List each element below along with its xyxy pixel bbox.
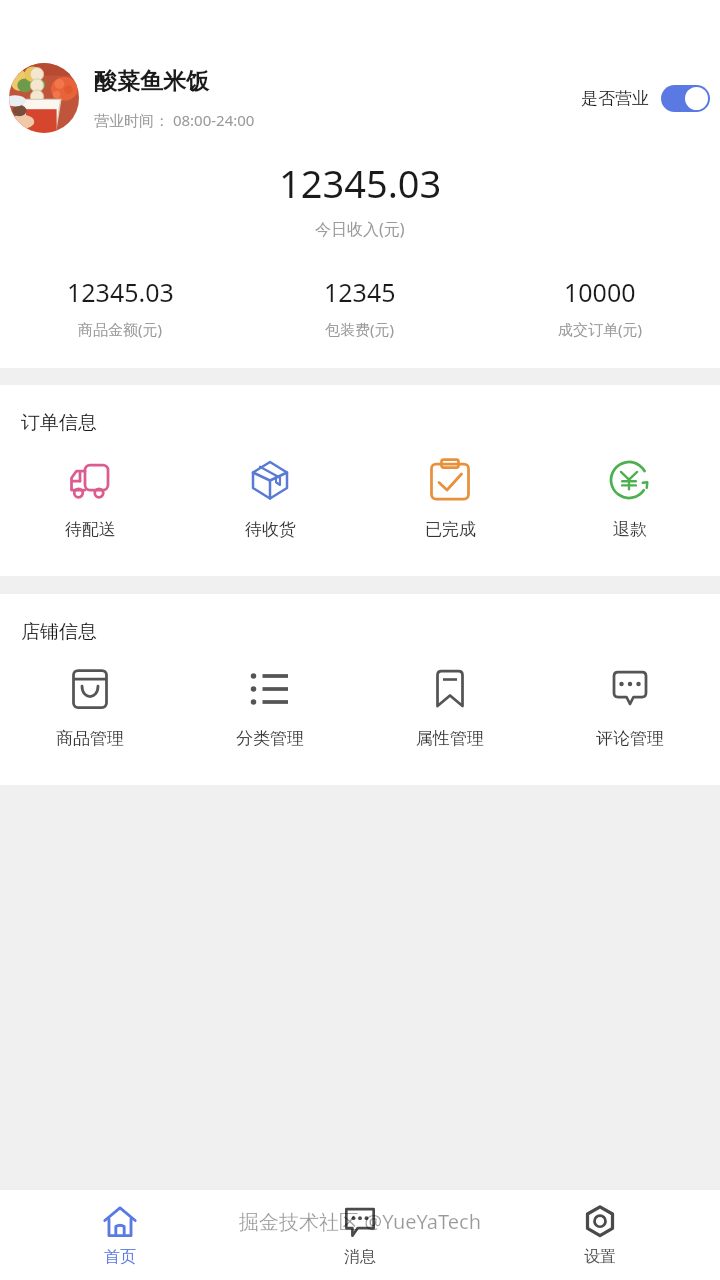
button[interactable]: 12345 [240, 275, 480, 339]
button[interactable]: 设置 [480, 1190, 720, 1280]
staticText: 12345 [324, 275, 396, 309]
staticText: 12345.03 [67, 275, 174, 309]
staticText: 设置 [584, 1247, 616, 1267]
button[interactable]: 10000 [480, 275, 720, 339]
other: 消息 [341, 1203, 379, 1241]
button[interactable]: 消息 [240, 1190, 480, 1280]
button[interactable]: 待收货 [180, 449, 360, 546]
staticText: 酸菜鱼米饭 [94, 67, 209, 96]
staticText: 消息 [344, 1247, 376, 1267]
staticText: 评论管理 [596, 728, 664, 749]
button[interactable]: 属性管理 [360, 658, 540, 755]
staticText: 商品管理 [56, 728, 124, 749]
other: 退款 [605, 455, 655, 505]
staticText: 退款 [613, 519, 647, 540]
button[interactable]: 首页 [0, 1190, 240, 1280]
staticText: 12345.03 [279, 157, 442, 209]
other: 已完成 [425, 455, 475, 505]
staticText: 分类管理 [236, 728, 304, 749]
button[interactable]: 分类管理 [180, 658, 360, 755]
staticText: 待收货 [245, 519, 296, 540]
other: 首页 [101, 1203, 139, 1241]
other: 属性管理 [425, 664, 475, 714]
staticText: 待配送 [65, 519, 116, 540]
other: 待配送 [65, 455, 115, 505]
staticText: 是否营业 [581, 88, 649, 109]
staticText: 订单信息 [21, 411, 97, 435]
button[interactable]: 评论管理 [540, 658, 720, 755]
button[interactable]: 待配送 [0, 449, 180, 546]
other: 待收货 [245, 455, 295, 505]
staticText: 店铺信息 [21, 620, 97, 644]
button[interactable]: 12345.03 [0, 275, 240, 339]
staticText: 已完成 [425, 519, 476, 540]
button[interactable]: 退款 [540, 449, 720, 546]
other: 分类管理 [245, 664, 295, 714]
staticText: 掘金技术社区 @YueYaTech [239, 1208, 482, 1235]
staticText: 首页 [104, 1247, 136, 1267]
staticText: 属性管理 [416, 728, 484, 749]
staticText: 商品金额(元) [78, 319, 163, 339]
button[interactable]: 已完成 [360, 449, 540, 546]
button[interactable]: 商品管理 [0, 658, 180, 755]
staticText: 今日收入(元) [315, 218, 405, 240]
staticText: 成交订单(元) [558, 319, 643, 339]
button[interactable] [661, 85, 710, 112]
other: 商品管理 [65, 664, 115, 714]
staticText: 包装费(元) [325, 319, 395, 339]
other: 设置 [581, 1203, 619, 1241]
staticText: 营业时间： 08:00-24:00 [94, 110, 255, 130]
staticText: 10000 [564, 275, 636, 309]
other: 评论管理 [605, 664, 655, 714]
